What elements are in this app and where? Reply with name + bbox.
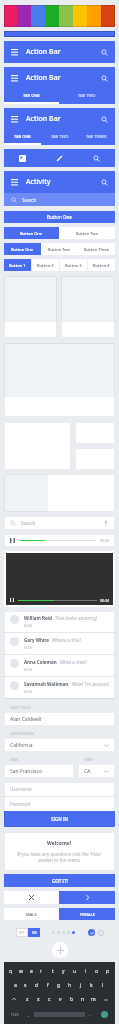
button[interactable]: Username xyxy=(4,782,115,796)
button[interactable]: Gary White xyxy=(4,633,115,655)
button[interactable]: Search xyxy=(101,75,108,82)
button[interactable]: Button 4 xyxy=(88,259,115,271)
button[interactable]: f xyxy=(42,978,53,992)
button[interactable]: Pause xyxy=(4,534,115,547)
button[interactable]: Pause xyxy=(6,553,113,605)
button[interactable]: d xyxy=(31,978,42,992)
button[interactable]: Anna Coleman xyxy=(4,655,115,677)
button[interactable]: u xyxy=(69,964,80,978)
button[interactable]: Close xyxy=(4,891,59,904)
button[interactable]: Menu xyxy=(4,41,115,63)
button[interactable]: Search xyxy=(78,149,115,167)
staticText: If you have any questions visit the 'Hel… xyxy=(12,851,107,863)
button[interactable]: Search xyxy=(101,116,108,123)
button[interactable]: TAB TWO xyxy=(41,130,78,143)
staticText: Button One xyxy=(20,231,43,236)
button[interactable]: Search xyxy=(4,516,115,530)
button[interactable]: n xyxy=(77,992,88,1007)
button[interactable]: p xyxy=(102,964,113,978)
button[interactable]: Search xyxy=(4,193,115,206)
button[interactable]: Add xyxy=(51,941,69,959)
button[interactable]: g xyxy=(53,978,64,992)
button[interactable]: t xyxy=(47,964,58,978)
button[interactable]: William Reid xyxy=(4,611,115,633)
button[interactable]: j xyxy=(75,978,86,992)
button[interactable]: Button 2 xyxy=(32,259,59,271)
button[interactable]: TAB ONE xyxy=(4,130,41,143)
button[interactable]: r xyxy=(36,964,47,978)
staticText: TAB ONE xyxy=(23,93,40,98)
button[interactable]: California xyxy=(4,738,115,752)
button[interactable]: x xyxy=(33,992,44,1007)
button[interactable]: Button One xyxy=(4,243,41,255)
button[interactable]: TAB THREE xyxy=(78,130,115,143)
button[interactable]: , xyxy=(24,1007,34,1022)
button[interactable]: Button One xyxy=(4,227,59,239)
button[interactable] xyxy=(99,992,113,1007)
button[interactable]: Savannah Walkman xyxy=(4,677,115,699)
button[interactable]: Menu xyxy=(11,49,18,56)
button[interactable]: Menu xyxy=(4,171,115,193)
button[interactable]: SIGN IN xyxy=(4,811,115,827)
button[interactable]: GOT IT! xyxy=(4,874,115,887)
button[interactable]: Menu xyxy=(11,179,18,186)
button[interactable]: TAB ONE xyxy=(4,89,59,102)
button[interactable]: ?123 xyxy=(6,1007,24,1022)
button[interactable]: v xyxy=(55,992,66,1007)
button[interactable]: Edit xyxy=(41,149,78,167)
button[interactable]: y xyxy=(58,964,69,978)
button[interactable] xyxy=(88,929,95,936)
staticText: TAB THREE xyxy=(86,134,107,139)
button[interactable]: CA xyxy=(78,764,115,778)
button[interactable]: Button Two xyxy=(59,227,115,239)
button[interactable]: Button 1 xyxy=(4,259,31,271)
button[interactable]: MALE xyxy=(4,908,59,920)
button[interactable]: Search xyxy=(101,179,108,186)
button[interactable] xyxy=(98,930,104,936)
button[interactable]: Menu xyxy=(11,116,18,123)
staticText: Where is this? xyxy=(52,637,82,643)
button[interactable]: z xyxy=(21,992,33,1007)
button[interactable]: . xyxy=(85,1007,95,1022)
button[interactable]: q xyxy=(6,964,16,978)
button[interactable]: Enter xyxy=(95,1007,113,1022)
button[interactable]: c xyxy=(44,992,55,1007)
staticText: Welcome! xyxy=(47,840,72,847)
button[interactable]: Button Two xyxy=(41,243,78,255)
button[interactable]: Next xyxy=(59,891,115,904)
button[interactable]: e xyxy=(26,964,36,978)
staticText: California xyxy=(10,742,33,749)
staticText: Savannah Walkman xyxy=(24,681,69,687)
button[interactable]: a xyxy=(10,978,20,992)
button[interactable]: w xyxy=(16,964,26,978)
button[interactable]: Menu xyxy=(4,108,115,130)
button[interactable]: b xyxy=(66,992,77,1007)
button[interactable]: FEMALE xyxy=(59,908,115,920)
button[interactable]: TAB TWO xyxy=(59,89,115,102)
button[interactable]: Alan Caldwell xyxy=(4,712,115,726)
button[interactable]: OFF xyxy=(16,928,40,937)
button[interactable]: i xyxy=(80,964,91,978)
button[interactable]: San Francisco xyxy=(4,764,74,778)
button[interactable]: Photos xyxy=(4,149,41,167)
button[interactable]: s xyxy=(20,978,31,992)
button[interactable] xyxy=(6,992,21,1007)
button[interactable]: Search xyxy=(101,49,108,56)
button[interactable]: m xyxy=(88,992,99,1007)
button[interactable]: Button 3 xyxy=(60,259,87,271)
button[interactable]: h xyxy=(64,978,75,992)
button[interactable]: Menu xyxy=(4,67,115,89)
staticText: v xyxy=(59,996,62,1003)
staticText: k xyxy=(90,982,93,989)
button[interactable]: l xyxy=(97,978,108,992)
button[interactable]: Menu xyxy=(11,75,18,82)
staticText: i xyxy=(85,968,87,975)
button[interactable]: Button Three xyxy=(78,243,115,255)
staticText: Activity xyxy=(26,177,51,187)
staticText: TAB TWO xyxy=(51,134,69,139)
button[interactable]: k xyxy=(86,978,97,992)
button[interactable]: o xyxy=(91,964,102,978)
button[interactable]: Button One xyxy=(4,211,115,223)
button[interactable]: Password xyxy=(4,797,115,811)
